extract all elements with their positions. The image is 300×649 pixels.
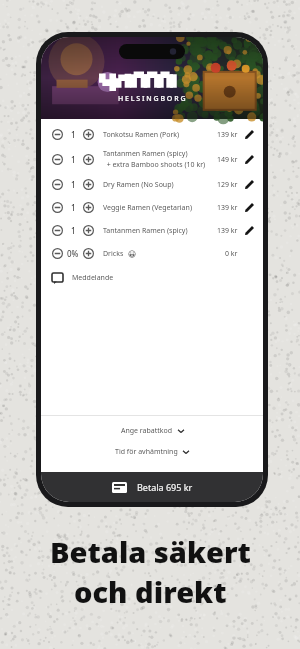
staticText: Tantanmen Ramen (spicy) <box>103 226 188 236</box>
staticText: 139 kr <box>217 203 238 213</box>
staticText: Tid för avhämtning <box>115 447 178 457</box>
button[interactable]: Decrease <box>41 146 263 173</box>
staticText: 1 <box>71 225 76 236</box>
button[interactable]: Decrease <box>41 196 263 219</box>
staticText: 😀 <box>128 250 137 259</box>
staticText: 1 <box>71 179 76 190</box>
staticText: 149 kr <box>217 155 238 165</box>
button[interactable]: Decrease <box>52 129 63 140</box>
staticText: 1 <box>71 129 76 140</box>
button[interactable]: Edit <box>245 180 254 189</box>
staticText: 1 <box>71 202 76 213</box>
button[interactable]: Tid för avhämtning <box>75 444 229 460</box>
staticText: Betala 695 kr <box>137 481 193 493</box>
staticText: 139 kr <box>217 226 238 236</box>
button[interactable]: Increase <box>83 179 94 190</box>
button[interactable]: Increase <box>83 202 94 213</box>
staticText: Betala säkert <box>50 532 251 571</box>
button[interactable]: Increase <box>83 248 94 259</box>
staticText: 0% <box>67 248 79 259</box>
staticText: Dry Ramen (No Soup) <box>103 180 174 190</box>
button[interactable]: Decrease <box>41 173 263 196</box>
staticText: 1 <box>71 154 76 165</box>
button[interactable]: Edit <box>245 226 254 235</box>
button[interactable]: Decrease <box>52 225 63 236</box>
staticText: Veggie Ramen (Vegetarian) <box>103 203 192 213</box>
button[interactable]: Decrease <box>52 154 63 165</box>
button[interactable]: Edit <box>245 130 254 139</box>
staticText: 0 kr <box>225 249 238 259</box>
button[interactable]: Betala 695 kr <box>41 472 263 502</box>
button[interactable]: Decrease <box>52 202 63 213</box>
button[interactable]: Edit <box>245 155 254 164</box>
button[interactable]: Decrease <box>52 179 63 190</box>
staticText: 129 kr <box>217 180 238 190</box>
button[interactable]: Increase <box>83 225 94 236</box>
button[interactable]: Ange rabattkod <box>75 423 229 439</box>
staticText: Meddelande <box>72 273 114 283</box>
staticText: Tonkotsu Ramen (Pork) <box>103 130 180 140</box>
staticText: 139 kr <box>217 130 238 140</box>
staticText: Tantanmen Ramen (spicy) <box>103 149 188 159</box>
button[interactable]: Decrease <box>41 219 263 242</box>
button[interactable]: Decrease <box>41 242 263 265</box>
button[interactable]: Decrease <box>41 123 263 146</box>
button[interactable]: Edit <box>245 203 254 212</box>
button[interactable]: Increase <box>83 129 94 140</box>
other: Message <box>52 273 63 284</box>
button[interactable]: Increase <box>83 154 94 165</box>
button[interactable]: Message <box>41 265 263 291</box>
button[interactable]: Decrease <box>52 248 63 259</box>
staticText: H E L S I N G B O R G <box>118 94 186 104</box>
staticText: + extra Bamboo shoots (10 kr) <box>103 160 206 170</box>
staticText: Dricks <box>103 249 124 259</box>
staticText: Ange rabattkod <box>121 426 173 436</box>
staticText: och direkt <box>74 572 227 611</box>
